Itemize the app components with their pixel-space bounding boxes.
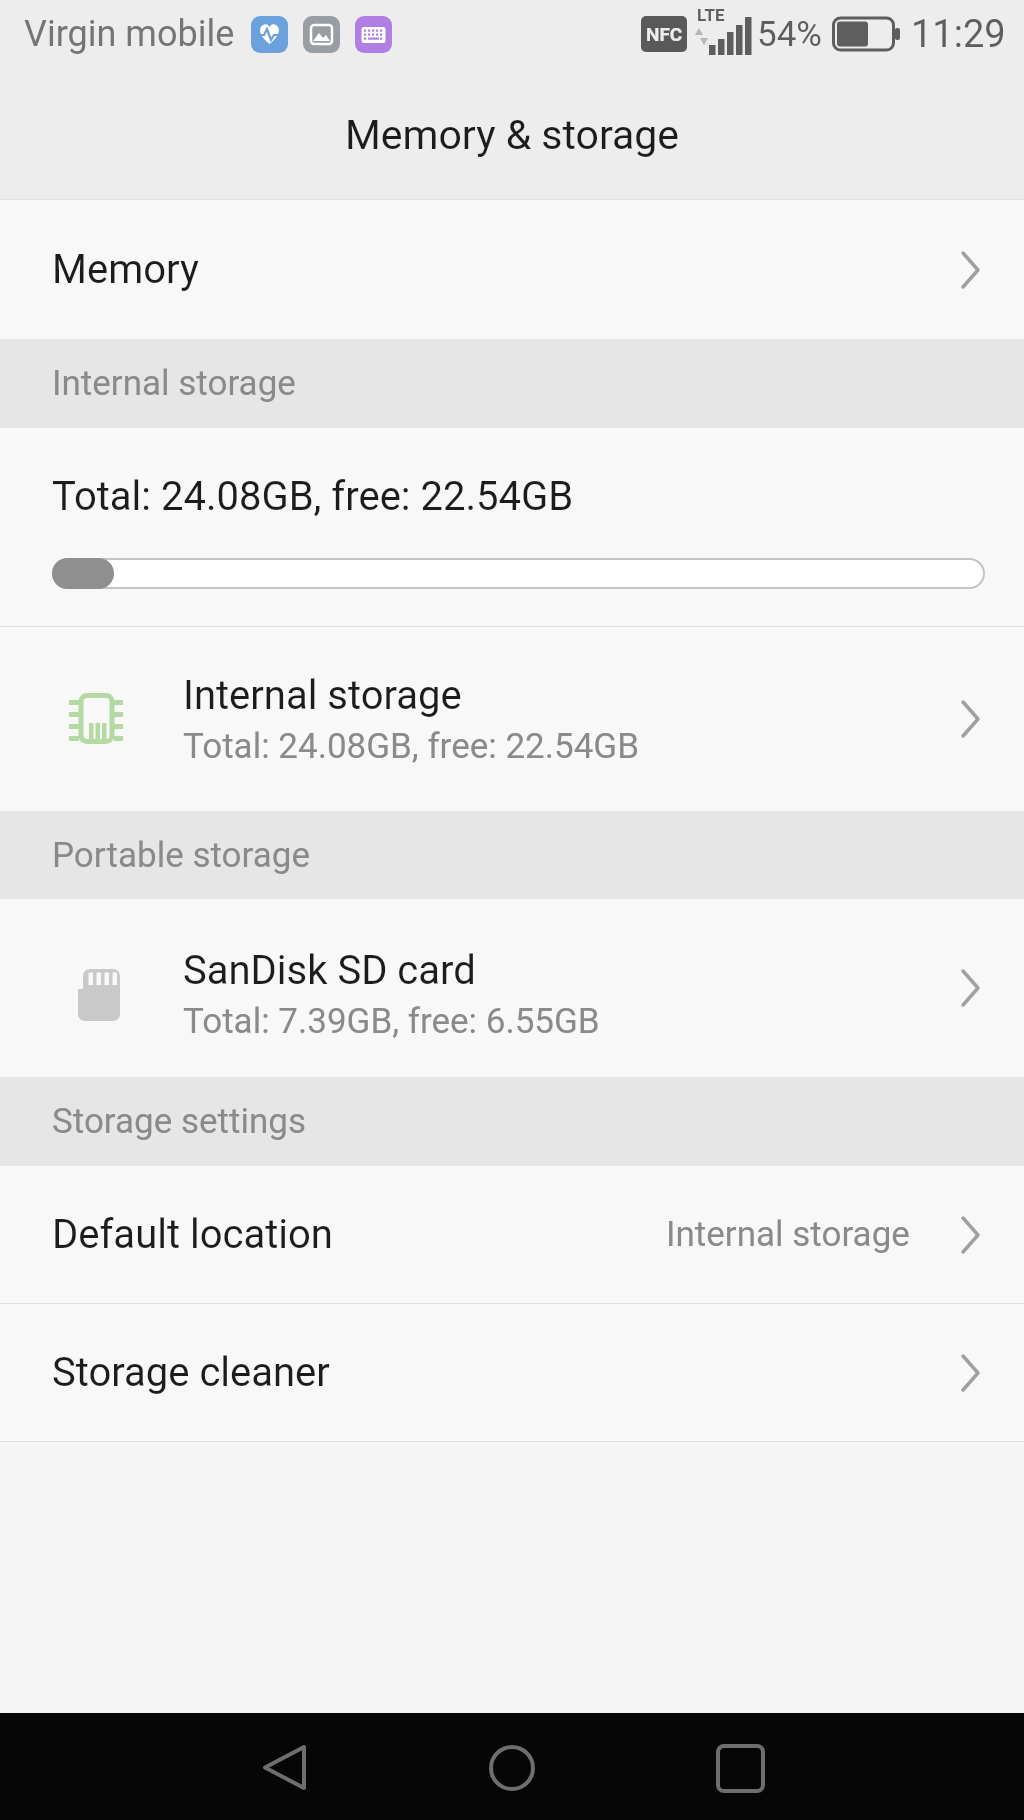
staticText: SanDisk SD card [183, 947, 476, 994]
staticText: Total: 24.08GB, free: 22.54GB [52, 473, 574, 520]
staticText: 11:29 [911, 12, 1006, 57]
button[interactable]: Storage cleaner [0, 1304, 1024, 1441]
staticText: Storage cleaner [52, 1349, 330, 1396]
staticText: Default location [52, 1211, 333, 1258]
staticText: Internal storage [183, 672, 462, 719]
button[interactable] [262, 1744, 308, 1790]
staticText: Memory & storage [345, 111, 680, 159]
staticText: 54% [757, 14, 822, 55]
staticText: NFC [646, 23, 683, 45]
staticText: Internal storage [666, 1214, 910, 1255]
button[interactable]: SanDisk SD card [0, 899, 1024, 1077]
staticText: Storage settings [52, 1101, 307, 1142]
button[interactable] [489, 1745, 535, 1791]
staticText: Memory [52, 246, 199, 293]
button[interactable]: Internal storage [0, 627, 1024, 811]
staticText: Internal storage [52, 363, 296, 404]
staticText: Total: 24.08GB, free: 22.54GB [183, 726, 639, 767]
staticText: Virgin mobile [24, 13, 235, 55]
button[interactable]: Default location [0, 1166, 1024, 1303]
button[interactable] [717, 1745, 763, 1791]
staticText: Portable storage [52, 835, 310, 876]
staticText: LTE [697, 5, 725, 25]
button[interactable]: Memory [0, 200, 1024, 339]
staticText: Total: 7.39GB, free: 6.55GB [183, 1001, 600, 1042]
